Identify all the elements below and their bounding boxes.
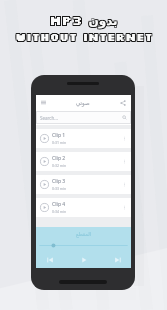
staticText: Clip 3 [52,178,66,185]
staticText: MP3 بدون [48,14,117,29]
staticText: MP3 بدون [49,12,118,27]
staticText: WITHOUT INTERNET [14,30,152,44]
staticText: MP3 بدون [50,14,119,29]
staticText: 0:33 min [52,186,67,191]
staticText: المقطع [76,231,92,237]
staticText: Clip 2 [52,155,66,162]
button[interactable]: More options [121,175,128,194]
button[interactable]: Menu [36,95,50,110]
staticText: WITHOUT INTERNET [15,31,153,45]
button[interactable]: Previous [43,253,56,266]
button[interactable]: Clip 4 [36,198,131,217]
button[interactable]: Clip 3 [36,175,131,194]
staticText: WITHOUT INTERNET [14,29,152,43]
button[interactable]: Clip 2 [36,152,131,171]
staticText: MP3 بدون [48,12,117,27]
staticText: WITHOUT INTERNET [14,31,152,45]
button[interactable]: More options [121,129,128,148]
staticText: Clip 4 [52,201,66,208]
button[interactable]: Play [77,253,90,266]
button[interactable]: Next [111,253,124,266]
button[interactable]: More options [121,152,128,171]
staticText: MP3 بدون [48,13,117,28]
staticText: WITHOUT INTERNET [16,31,154,45]
staticText: WITHOUT INTERNET [15,30,153,44]
staticText: 0:34 min [52,209,67,214]
staticText: WITHOUT INTERNET [15,29,153,43]
button[interactable]: Clip 1 [36,129,131,148]
staticText: MP3 بدون [49,13,118,28]
button[interactable]: More options [121,198,128,217]
staticText: Search... [40,115,58,121]
staticText: Clip 1 [52,132,66,139]
staticText: صوتي [76,100,90,106]
staticText: 0:31 min [52,140,67,145]
staticText: MP3 بدون [49,14,118,29]
staticText: MP3 بدون [50,13,119,28]
button[interactable]: Share [115,95,131,110]
staticText: 0:32 min [52,163,67,168]
staticText: MP3 بدون [50,12,119,27]
staticText: WITHOUT INTERNET [16,29,154,43]
staticText: WITHOUT INTERNET [16,30,154,44]
button[interactable]: Search... [36,111,131,124]
